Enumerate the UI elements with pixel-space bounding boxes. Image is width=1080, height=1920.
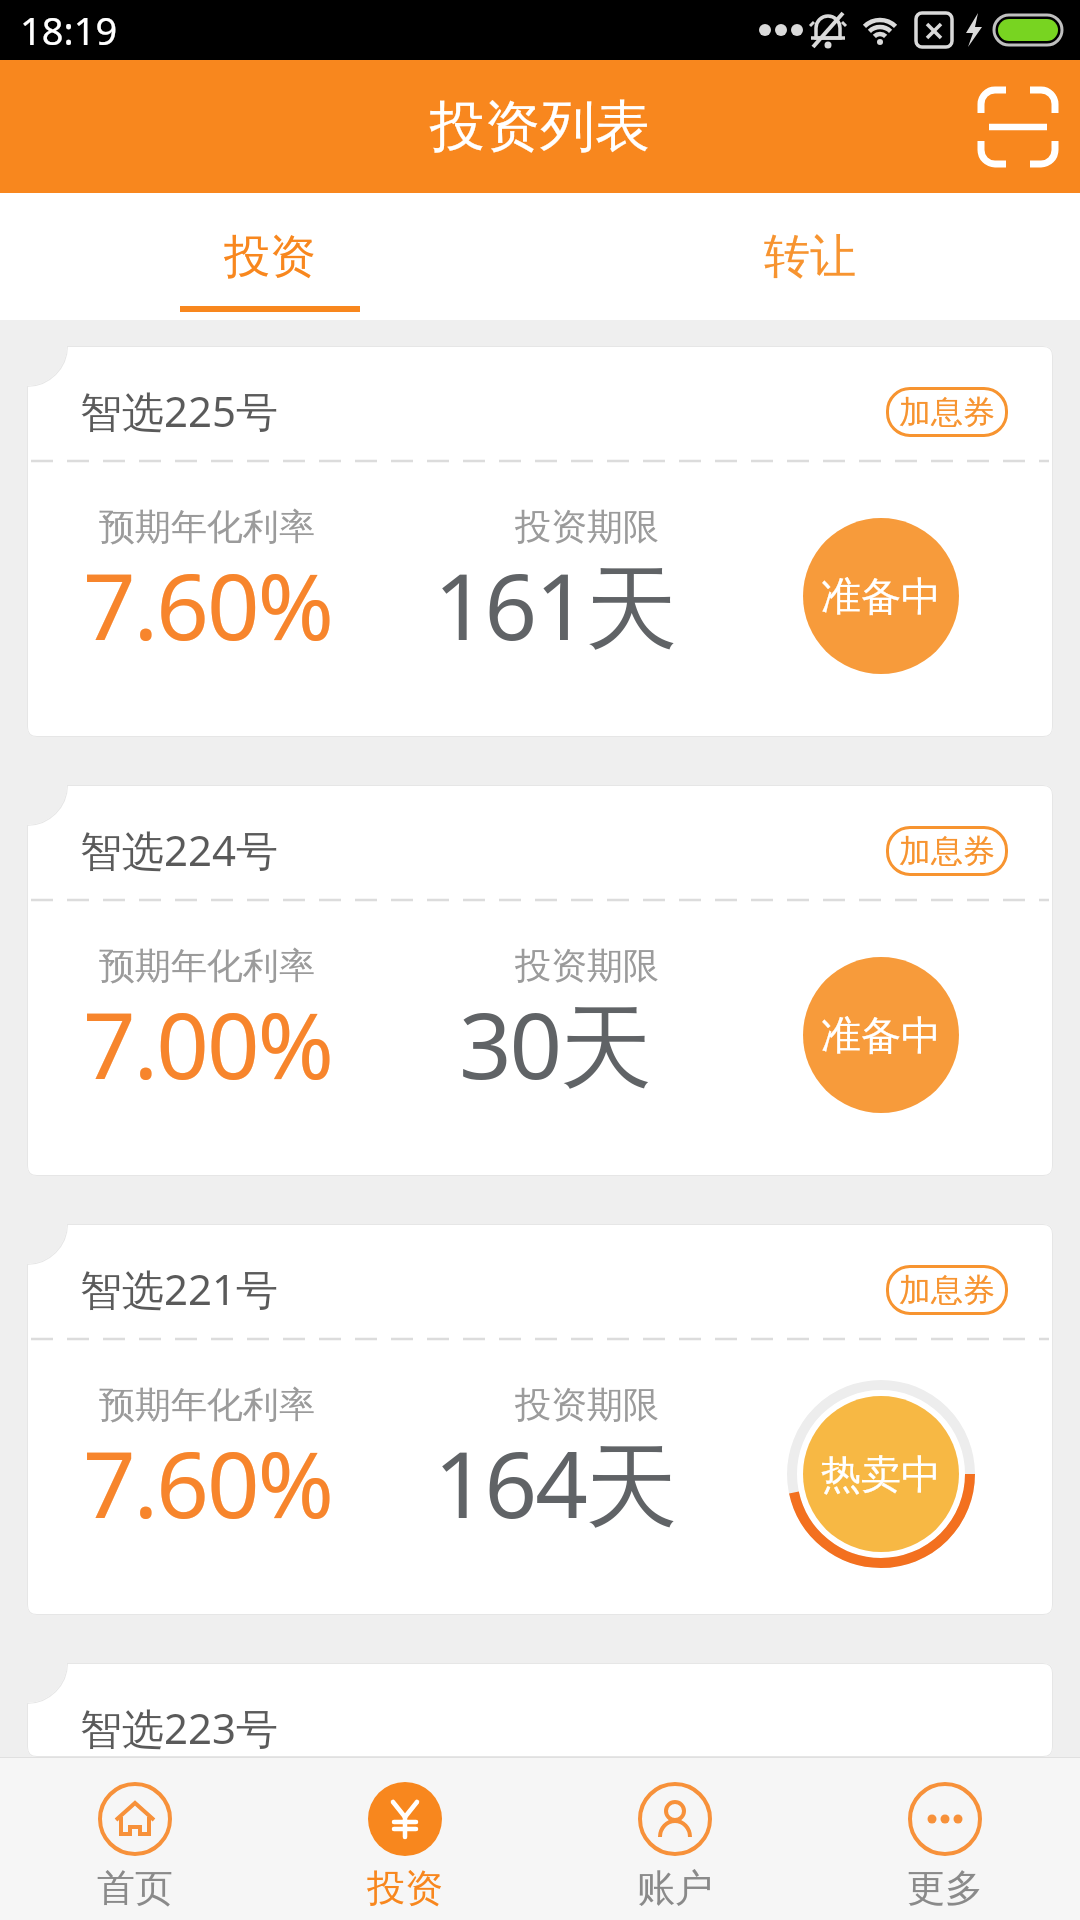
staticText: 智选223号 [80,1699,279,1756]
staticText: 投资期限 [515,1382,659,1427]
staticText: 7.60% [83,1420,332,1545]
button[interactable]: 投资 [270,1758,540,1920]
button[interactable]: 准备中 [803,957,959,1113]
staticText: 投资 [224,228,316,286]
staticText: 热卖中 [821,1449,941,1499]
button[interactable]: 首页 [0,1758,270,1920]
staticText: 加息券 [899,831,995,871]
button[interactable]: 加息券 [899,392,995,432]
staticText: 7.60% [83,542,332,667]
button[interactable]: 账户 [540,1758,810,1920]
staticText: 预期年化利率 [99,504,315,549]
staticText: 30天 [459,981,651,1107]
button[interactable]: 智选221号 [27,1224,1053,1615]
staticText: 164天 [434,1420,676,1546]
button[interactable]: 投资 [0,193,540,320]
button[interactable] [968,77,1068,177]
staticText: 加息券 [899,392,995,432]
staticText: 智选221号 [80,1260,279,1317]
staticText: 转让 [764,228,856,286]
staticText: 准备中 [821,571,941,621]
button[interactable]: 智选225号 [27,346,1053,737]
staticText: 预期年化利率 [99,943,315,988]
staticText: 加息券 [899,1270,995,1310]
button[interactable]: 加息券 [899,1270,995,1310]
staticText: 首页 [97,1864,173,1912]
staticText: 预期年化利率 [99,1382,315,1427]
staticText: 投资 [367,1864,443,1912]
staticText: 投资期限 [515,504,659,549]
button[interactable]: 转让 [540,193,1080,320]
staticText: 智选224号 [80,821,279,878]
button[interactable]: 智选223号 [27,1663,1053,1757]
button[interactable]: 更多 [810,1758,1080,1920]
staticText: 18:19 [20,4,118,56]
button[interactable]: 准备中 [803,518,959,674]
button[interactable]: 智选224号 [27,785,1053,1176]
staticText: 投资列表 [430,92,650,161]
staticText: 更多 [907,1864,983,1912]
staticText: 投资期限 [515,943,659,988]
staticText: 7.00% [83,981,332,1106]
staticText: 161天 [434,542,676,668]
button[interactable]: 热卖中 [787,1380,975,1568]
staticText: 准备中 [821,1010,941,1060]
button[interactable]: 加息券 [899,831,995,871]
staticText: 账户 [637,1864,713,1912]
staticText: 智选225号 [80,382,279,439]
